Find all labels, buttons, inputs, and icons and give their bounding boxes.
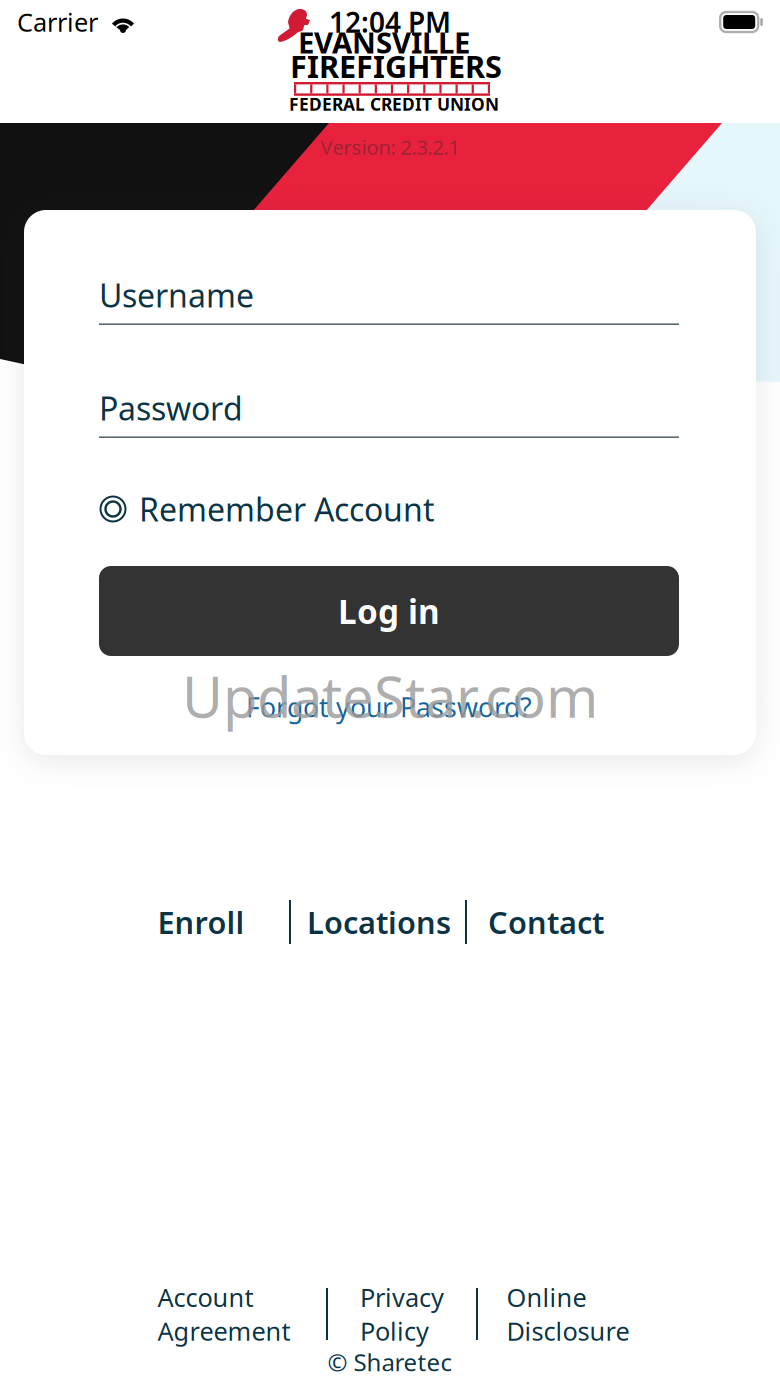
button[interactable]: © Sharetec <box>0 1347 780 1377</box>
staticText: Username <box>99 274 254 316</box>
staticText: UpdateStar.com <box>182 659 598 733</box>
button[interactable]: Remember Account <box>99 488 519 530</box>
staticText: Log in <box>338 589 440 633</box>
button[interactable]: Forgot your Password? <box>99 687 679 727</box>
staticText: FIREFIGHTERS <box>290 46 502 86</box>
staticText: Online Disclosure <box>506 1280 629 1348</box>
staticText: Contact <box>488 902 604 942</box>
staticText: Enroll <box>157 902 244 942</box>
button[interactable]: Locations <box>305 899 453 945</box>
button[interactable]: Online Disclosure <box>493 1283 643 1345</box>
staticText: Version: 2.3.2.1 <box>320 134 459 160</box>
staticText: Remember Account <box>139 488 435 530</box>
staticText: Password <box>99 387 243 429</box>
button[interactable]: Contact <box>484 899 608 945</box>
button[interactable]: Log in <box>99 566 679 656</box>
button[interactable]: Privacy Policy <box>327 1283 477 1345</box>
staticText: Privacy Policy <box>360 1280 444 1348</box>
button[interactable]: Account Agreement <box>149 1283 299 1345</box>
staticText: Carrier <box>17 5 98 39</box>
staticText: © Sharetec <box>327 1346 452 1378</box>
button[interactable]: Enroll <box>151 899 251 945</box>
staticText: Locations <box>307 902 451 942</box>
staticText: Forgot your Password? <box>246 689 532 725</box>
staticText: 12:04 PM <box>329 3 451 41</box>
staticText: EVANSVILLE <box>298 22 470 61</box>
staticText: FEDERAL CREDIT UNION <box>289 92 499 115</box>
staticText: Account Agreement <box>157 1280 290 1348</box>
